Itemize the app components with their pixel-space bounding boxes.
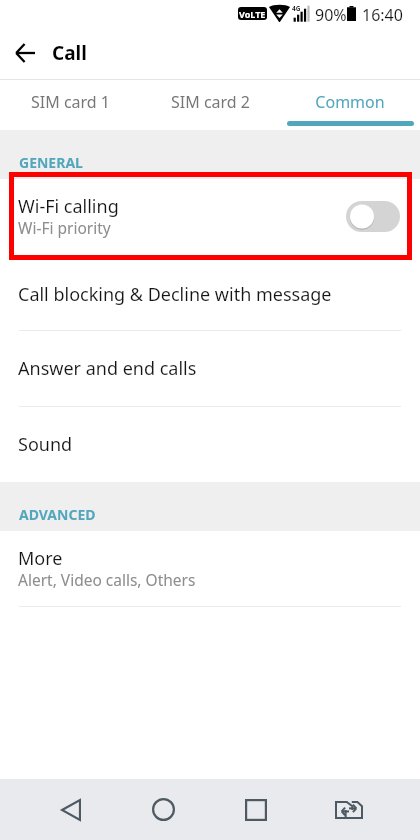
staticText: Common xyxy=(315,91,385,113)
button[interactable]: Call blocking & Decline with message xyxy=(0,258,420,330)
button[interactable]: Recents xyxy=(228,779,284,840)
staticText: SIM card 1 xyxy=(31,91,110,113)
button[interactable]: Switch apps xyxy=(321,779,377,840)
staticText: GENERAL xyxy=(19,153,83,172)
staticText: Alert, Video calls, Others xyxy=(18,569,196,590)
button[interactable]: Home xyxy=(135,779,191,840)
staticText: Wi-Fi priority xyxy=(18,217,111,238)
staticText: Wi-Fi calling xyxy=(18,194,119,219)
staticText: 4G xyxy=(292,4,301,13)
button[interactable]: Back xyxy=(15,40,41,66)
button[interactable]: Common xyxy=(280,80,420,130)
staticText: SIM card 2 xyxy=(171,91,250,113)
button[interactable]: SIM card 2 xyxy=(140,80,280,130)
staticText: Sound xyxy=(18,432,73,457)
button[interactable]: SIM card 1 xyxy=(0,80,140,130)
staticText: More xyxy=(18,546,63,571)
button[interactable]: Wi-Fi calling toggle xyxy=(346,201,400,232)
staticText: Answer and end calls xyxy=(18,356,197,381)
staticText: VoLTE xyxy=(239,8,266,20)
button[interactable]: Wi-Fi calling xyxy=(0,179,420,258)
staticText: 90% xyxy=(315,4,347,26)
button[interactable]: Back xyxy=(43,779,99,840)
button[interactable]: Sound xyxy=(0,407,420,482)
button[interactable]: More xyxy=(0,531,420,606)
button[interactable]: Answer and end calls xyxy=(0,331,420,406)
staticText: Call xyxy=(52,40,87,66)
staticText: ADVANCED xyxy=(19,505,96,524)
staticText: Call blocking & Decline with message xyxy=(18,282,332,307)
staticText: 16:40 xyxy=(362,4,403,26)
